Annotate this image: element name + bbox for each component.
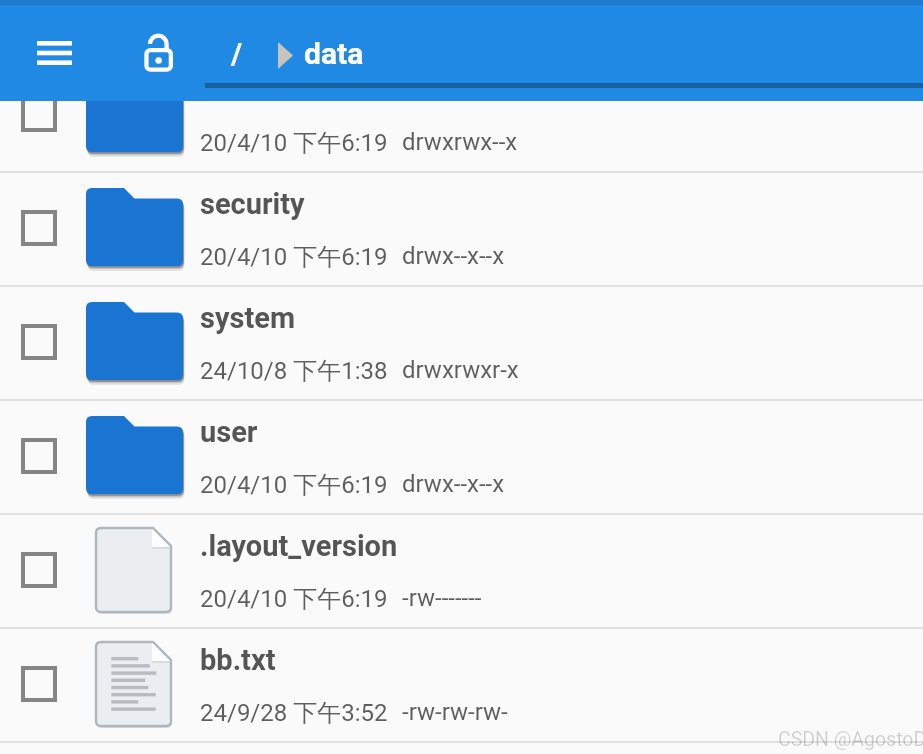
button[interactable]: Select system [8,311,70,373]
staticText: 20/4/10 下午6:19 [200,470,388,500]
button[interactable]: Select bb.txt [8,653,70,715]
staticText: -rw------- [402,584,482,612]
staticText: security [200,187,923,221]
button[interactable]: Unlock [116,18,204,88]
staticText: .layout_version [200,529,923,563]
button[interactable]: Menu [13,23,95,83]
staticText: drwxrwx--x [402,128,518,156]
button[interactable]: Select .layout_version [8,539,70,601]
button[interactable]: Select security [8,197,70,259]
staticText: -rw-rw-rw- [402,698,508,726]
button[interactable]: Select bb.txt [0,629,923,743]
staticText: 20/4/10 下午6:19 [200,584,388,614]
button[interactable]: Select [0,59,923,173]
staticText: 20/4/10 下午6:19 [200,242,388,272]
staticText: CSDN @AgostoDuu [778,728,923,751]
staticText: 20/4/10 下午6:19 [200,128,388,158]
staticText: 24/9/28 下午3:52 [200,698,388,728]
staticText: system [200,301,923,335]
staticText: user [200,415,923,449]
button[interactable]: Select [8,83,70,145]
button[interactable]: Select .layout_version [0,515,923,629]
button[interactable]: Select system [0,287,923,401]
staticText: drwx--x--x [402,242,505,270]
staticText: / [231,36,243,71]
button[interactable]: Select user [8,425,70,487]
staticText: drwx--x--x [402,470,505,498]
staticText: data [304,36,364,71]
button[interactable]: Select user [0,401,923,515]
button[interactable]: data [299,30,359,76]
staticText: 24/10/8 下午1:38 [200,356,388,386]
staticText: bb.txt [200,643,923,677]
button[interactable]: / [225,30,237,76]
button[interactable]: Select security [0,173,923,287]
staticText: drwxrwxr-x [402,356,519,384]
